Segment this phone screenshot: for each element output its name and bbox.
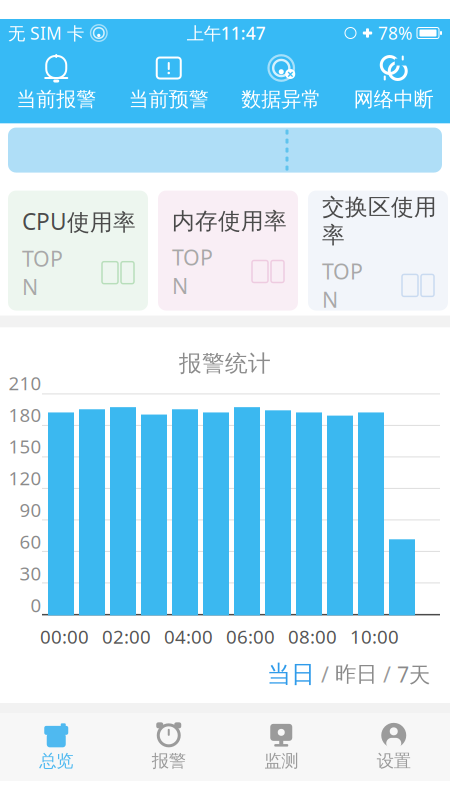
button[interactable]: 网络中断	[337, 49, 450, 116]
staticText: /	[377, 660, 397, 688]
staticText: 180	[8, 402, 41, 427]
button[interactable]: CPU使用率	[8, 191, 148, 311]
staticText: 00:00	[40, 624, 89, 649]
staticText: 60	[19, 529, 41, 554]
button[interactable]: 当前报警	[0, 49, 112, 116]
staticText: 总览	[39, 750, 73, 772]
staticText: 报警	[152, 750, 186, 772]
staticText: 7天	[397, 660, 430, 688]
button[interactable]: ×	[225, 49, 337, 116]
button[interactable]: 监测	[225, 722, 337, 772]
button[interactable]: 当前预警	[112, 49, 225, 116]
staticText	[356, 18, 362, 48]
button[interactable]: 当日	[267, 659, 315, 689]
staticText: TOP N	[172, 243, 213, 300]
staticText: 报警统计	[179, 350, 271, 377]
staticText: 04:00	[164, 624, 213, 649]
staticText: 0	[30, 593, 41, 617]
staticText: CPU使用率	[22, 206, 136, 236]
staticText: TOP N	[322, 257, 363, 314]
button[interactable]: 总览	[0, 722, 112, 772]
staticText: TOP N	[22, 244, 63, 301]
staticText: 监测	[264, 750, 298, 772]
staticText: 120	[8, 466, 41, 490]
staticText: 30	[19, 561, 41, 586]
staticText: 无 SIM 卡	[8, 21, 84, 44]
staticText: 内存使用率	[172, 207, 287, 235]
staticText: 数据异常	[241, 87, 321, 112]
staticText: 上午11:47	[187, 21, 266, 44]
staticText	[84, 18, 90, 48]
staticText: 02:00	[102, 624, 151, 649]
staticText: 交换区使用率	[322, 193, 437, 249]
staticText: 网络中断	[354, 87, 434, 112]
staticText: 08:00	[288, 624, 337, 649]
button[interactable]: 设置	[337, 722, 450, 772]
staticText: 当日	[267, 659, 315, 689]
staticText: /	[315, 660, 335, 688]
staticText: 150	[8, 434, 41, 459]
button[interactable]: 昨日	[335, 661, 377, 687]
staticText: 210	[8, 371, 41, 395]
button[interactable]: 7天	[397, 660, 430, 688]
staticText: 当前报警	[16, 87, 96, 112]
button[interactable]: 内存使用率	[158, 191, 298, 311]
button[interactable]: 交换区使用率	[308, 191, 448, 311]
staticText: 06:00	[226, 624, 275, 649]
staticText: 90	[19, 497, 41, 522]
staticText: 78%	[373, 21, 417, 44]
staticText: ×	[287, 66, 294, 82]
staticText: 设置	[377, 750, 411, 772]
button[interactable]: 报警	[112, 722, 225, 772]
staticText: 当前预警	[129, 87, 209, 112]
staticText: 10:00	[350, 624, 399, 649]
staticText: 昨日	[335, 661, 377, 687]
